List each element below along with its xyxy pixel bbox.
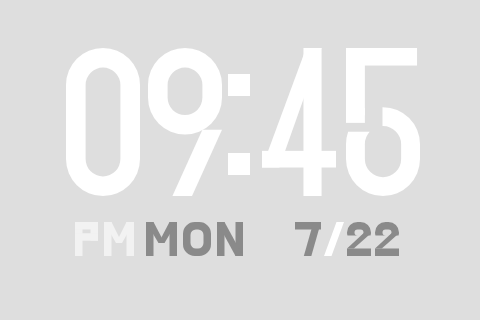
button[interactable]: Digital watch face, 09:45 PM, Monday 7/2… <box>0 0 480 320</box>
